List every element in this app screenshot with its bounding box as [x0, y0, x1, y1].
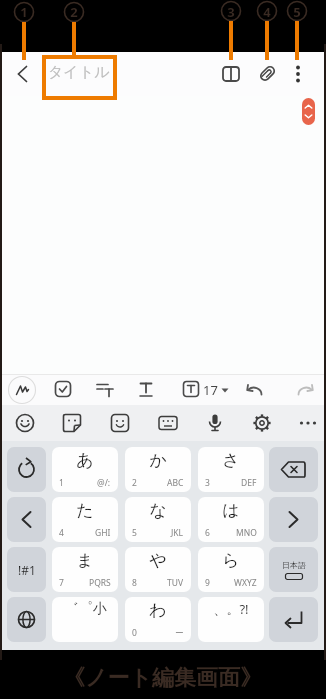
button[interactable]: さ — [198, 447, 264, 492]
staticText: 4 — [59, 527, 64, 539]
button[interactable] — [269, 497, 318, 542]
staticText: 0 — [132, 627, 137, 639]
button[interactable] — [135, 378, 157, 400]
staticText: 3 — [205, 477, 210, 489]
button[interactable] — [7, 375, 37, 405]
staticText: PQRS — [89, 577, 111, 589]
button[interactable]: わ — [125, 597, 191, 642]
button[interactable]: !#1 — [7, 547, 46, 592]
staticText: !#1 — [18, 562, 36, 578]
staticText: ゛゜小 — [64, 600, 107, 618]
button[interactable] — [7, 497, 46, 542]
button[interactable]: 17 — [203, 374, 229, 405]
staticText: 《ノート編集画面》 — [63, 664, 263, 692]
staticText: 7 — [59, 577, 64, 589]
staticText: DEF — [241, 477, 257, 489]
button[interactable]: ゛゜小 — [52, 597, 118, 642]
staticText: MNO — [236, 527, 257, 539]
button[interactable] — [293, 378, 317, 400]
button[interactable] — [269, 597, 318, 642]
button[interactable]: や — [125, 547, 191, 592]
staticText: 17 — [203, 381, 218, 399]
button[interactable]: は — [198, 497, 264, 542]
button[interactable] — [12, 410, 38, 436]
button[interactable] — [52, 378, 74, 400]
staticText: 2 — [132, 477, 137, 489]
staticText: か — [149, 450, 167, 471]
staticText: JKL — [171, 527, 184, 539]
button[interactable] — [302, 98, 315, 125]
button[interactable]: た — [52, 497, 118, 542]
staticText: 6 — [205, 527, 210, 539]
button[interactable]: 日本語 — [269, 547, 318, 592]
button[interactable] — [155, 410, 181, 436]
staticText: 8 — [132, 577, 137, 589]
button[interactable] — [295, 410, 321, 436]
staticText: 、。?! — [213, 600, 249, 618]
staticText: 3 — [223, 3, 239, 21]
staticText: あ — [76, 450, 94, 471]
button[interactable] — [249, 410, 275, 436]
button[interactable]: 、。?! — [198, 597, 264, 642]
staticText: た — [76, 500, 94, 521]
staticText: さ — [222, 450, 240, 471]
staticText: WXYZ — [234, 577, 257, 589]
staticText: ま — [76, 550, 94, 571]
button[interactable] — [269, 447, 318, 492]
button[interactable] — [8, 60, 36, 88]
button[interactable] — [287, 60, 309, 88]
button[interactable] — [7, 447, 46, 492]
button[interactable]: か — [125, 447, 191, 492]
staticText: GHI — [95, 527, 111, 539]
staticText: タイトル — [48, 63, 110, 82]
staticText: 2 — [66, 3, 82, 21]
button[interactable]: ら — [198, 547, 264, 592]
staticText: 1 — [59, 477, 64, 489]
staticText: わ — [149, 600, 167, 621]
staticText: TUV — [167, 577, 184, 589]
staticText: な — [149, 500, 167, 521]
button[interactable] — [107, 410, 133, 436]
button[interactable] — [180, 378, 202, 400]
staticText: や — [149, 550, 167, 571]
staticText: は — [222, 500, 240, 521]
staticText: 5 — [289, 3, 305, 21]
staticText: @/: — [97, 477, 111, 489]
staticText: 日本語 — [282, 560, 306, 570]
button[interactable] — [202, 410, 228, 436]
button[interactable] — [217, 60, 245, 88]
staticText: ABC — [167, 477, 184, 489]
staticText: 9 — [205, 577, 210, 589]
button[interactable] — [94, 378, 116, 400]
staticText: 4 — [259, 3, 275, 21]
staticText: 5 — [132, 527, 137, 539]
button[interactable]: あ — [52, 447, 118, 492]
staticText: ら — [222, 550, 240, 571]
button[interactable]: な — [125, 497, 191, 542]
button[interactable]: ま — [52, 547, 118, 592]
staticText: ー — [175, 628, 184, 639]
button[interactable] — [243, 378, 267, 400]
staticText: 1 — [16, 3, 32, 21]
button[interactable] — [253, 60, 281, 88]
button[interactable] — [7, 597, 46, 642]
button[interactable] — [59, 410, 85, 436]
